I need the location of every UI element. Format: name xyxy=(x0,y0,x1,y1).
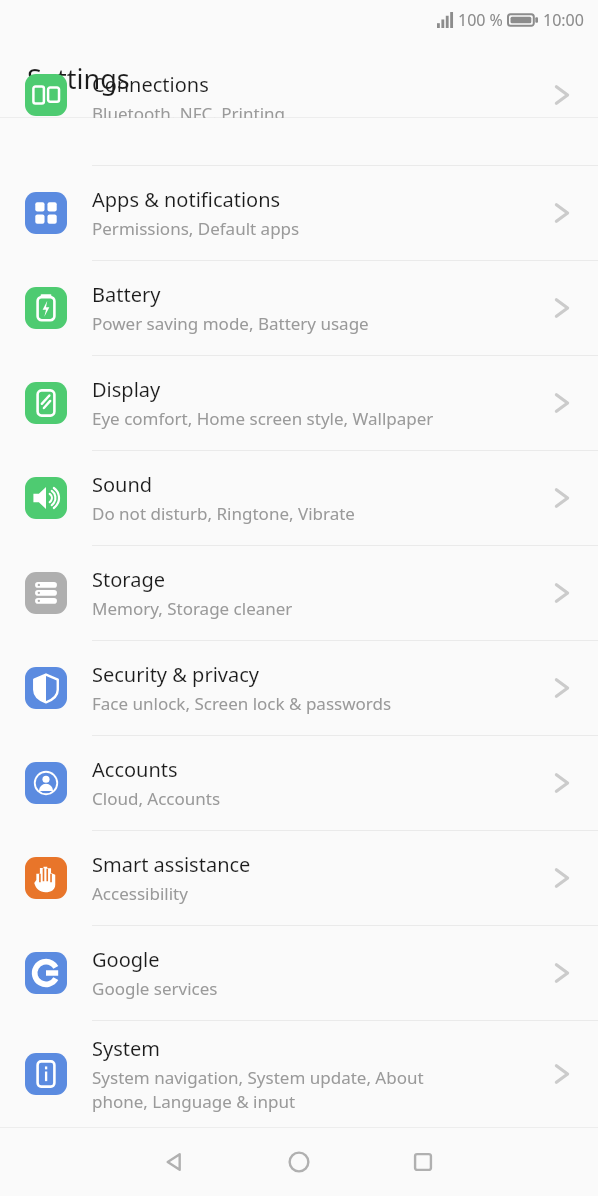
button[interactable]: Home xyxy=(237,1128,361,1196)
button[interactable]: Display xyxy=(0,356,598,450)
staticText: Settings xyxy=(27,60,130,97)
staticText: Power saving mode, Battery usage xyxy=(92,312,369,335)
staticText: Smart assistance xyxy=(92,851,251,878)
staticText: Security & privacy xyxy=(92,661,259,688)
button[interactable]: Accounts xyxy=(0,736,598,830)
staticText: Sound xyxy=(92,471,153,498)
button[interactable]: Sound xyxy=(0,451,598,545)
button[interactable]: Security & privacy xyxy=(0,641,598,735)
staticText: Accounts xyxy=(92,756,178,783)
staticText: Accessibility xyxy=(92,882,188,905)
staticText: Eye comfort, Home screen style, Wallpape… xyxy=(92,407,434,430)
button[interactable]: Smart assistance xyxy=(0,831,598,925)
staticText: 100 % xyxy=(458,9,503,31)
staticText: Bluetooth, NFC, Printing xyxy=(92,102,286,118)
staticText: Google xyxy=(92,946,160,973)
button[interactable]: Battery xyxy=(0,261,598,355)
staticText: Apps & notifications xyxy=(92,186,281,213)
button[interactable]: System xyxy=(0,1021,598,1127)
staticText: Memory, Storage cleaner xyxy=(92,597,293,620)
staticText: Connections xyxy=(92,71,209,98)
staticText: Permissions, Default apps xyxy=(92,217,300,240)
staticText: Display xyxy=(92,376,161,403)
staticText: Do not disturb, Ringtone, Vibrate xyxy=(92,502,355,525)
staticText: Face unlock, Screen lock & passwords xyxy=(92,692,392,715)
staticText: System navigation, System update, About … xyxy=(92,1066,424,1113)
button[interactable]: Back xyxy=(113,1128,237,1196)
button[interactable]: Storage xyxy=(0,546,598,640)
staticText: Battery xyxy=(92,281,161,308)
staticText: 10:00 xyxy=(543,9,584,31)
staticText: Cloud, Accounts xyxy=(92,787,221,810)
staticText: Google services xyxy=(92,977,218,1000)
staticText: Storage xyxy=(92,566,165,593)
staticText: System xyxy=(92,1035,160,1062)
button[interactable]: Google xyxy=(0,926,598,1020)
button[interactable]: Apps & notifications xyxy=(0,166,598,260)
button[interactable]: Recent apps xyxy=(361,1128,485,1196)
